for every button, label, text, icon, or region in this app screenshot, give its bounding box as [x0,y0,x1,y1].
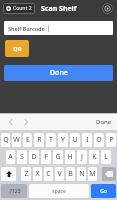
staticText: QR [13,45,22,53]
staticText: Go [100,188,107,195]
button[interactable]: QR [5,40,29,57]
staticText: F [44,152,48,162]
staticText: space [52,188,66,195]
button[interactable]: Z [21,167,31,181]
button[interactable]: Count 2 [3,3,35,14]
staticText: W [13,135,20,145]
button[interactable]: G [53,150,63,164]
button[interactable]: Done [4,65,113,81]
button[interactable]: U [70,133,80,147]
staticText: A [8,152,13,162]
button[interactable]: Y [58,133,68,147]
button[interactable]: Q [1,133,10,147]
staticText: J [81,152,83,162]
staticText: S [20,152,24,162]
button[interactable]: I [82,133,92,147]
button[interactable]: L [101,150,111,164]
staticText: M [89,169,96,179]
button[interactable]: A [6,150,15,164]
staticText: C [46,169,51,179]
button[interactable]: P [106,133,116,147]
staticText: K [92,152,97,162]
staticText: Scan Shelf [41,4,77,14]
staticText: V [57,169,62,179]
staticText: Done [96,118,112,126]
button[interactable]: W [12,133,21,147]
button[interactable]: O [94,133,104,147]
button[interactable]: C [44,167,53,181]
staticText: I [86,135,89,145]
staticText: N [79,169,85,179]
button[interactable]: R [34,133,44,147]
staticText: .?123 [8,188,21,195]
button[interactable]: K [89,150,99,164]
button[interactable]: M [88,167,97,181]
button[interactable]: Next field [20,116,31,127]
button[interactable]: .?123 [1,184,27,198]
staticText: Q [3,135,9,145]
staticText: L [104,152,108,162]
button[interactable]: B [66,167,75,181]
staticText: G [55,152,61,162]
staticText: D [31,152,37,162]
button[interactable]: H [65,150,75,164]
button[interactable]: Shelf Barcode [4,21,113,35]
button[interactable]: Shift [1,167,16,181]
staticText: H [67,152,73,162]
button[interactable]: Previous field [5,116,16,127]
staticText: E [26,135,30,145]
button[interactable]: X [33,167,42,181]
staticText: Z [24,169,29,179]
staticText: Done [50,68,68,78]
button[interactable]: D [29,150,39,164]
button[interactable]: E [23,133,32,147]
button[interactable]: V [55,167,64,181]
button[interactable]: J [77,150,87,164]
button[interactable]: T [46,133,56,147]
button[interactable]: N [77,167,86,181]
button[interactable]: S [17,150,27,164]
button[interactable]: Go [91,184,116,198]
staticText: O [96,135,102,145]
staticText: X [35,169,40,179]
staticText: B [68,169,73,179]
button[interactable]: space [29,184,89,198]
button[interactable]: F [41,150,51,164]
staticText: Shelf Barcode [8,25,45,32]
button[interactable]: Settings [102,3,113,14]
staticText: U [72,135,78,145]
staticText: Y [61,135,65,145]
staticText: T [49,135,53,145]
button[interactable]: Backspace [102,167,116,181]
staticText: Count 2 [13,5,32,12]
staticText: R [37,135,42,145]
staticText: P [109,135,114,145]
button[interactable]: Done [94,116,114,128]
